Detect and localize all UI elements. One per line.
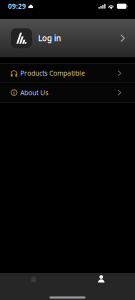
staticText: Products Compatible (20, 69, 85, 78)
button[interactable]: Account (67, 269, 135, 288)
button[interactable]: Log in (0, 19, 135, 57)
button[interactable]: About Us (0, 83, 135, 102)
staticText: 09:29 (8, 2, 26, 11)
button[interactable]: Products Compatible (0, 64, 135, 83)
staticText: About Us (20, 88, 48, 97)
button[interactable]: Shop (0, 269, 67, 288)
staticText: Log in (38, 33, 61, 43)
